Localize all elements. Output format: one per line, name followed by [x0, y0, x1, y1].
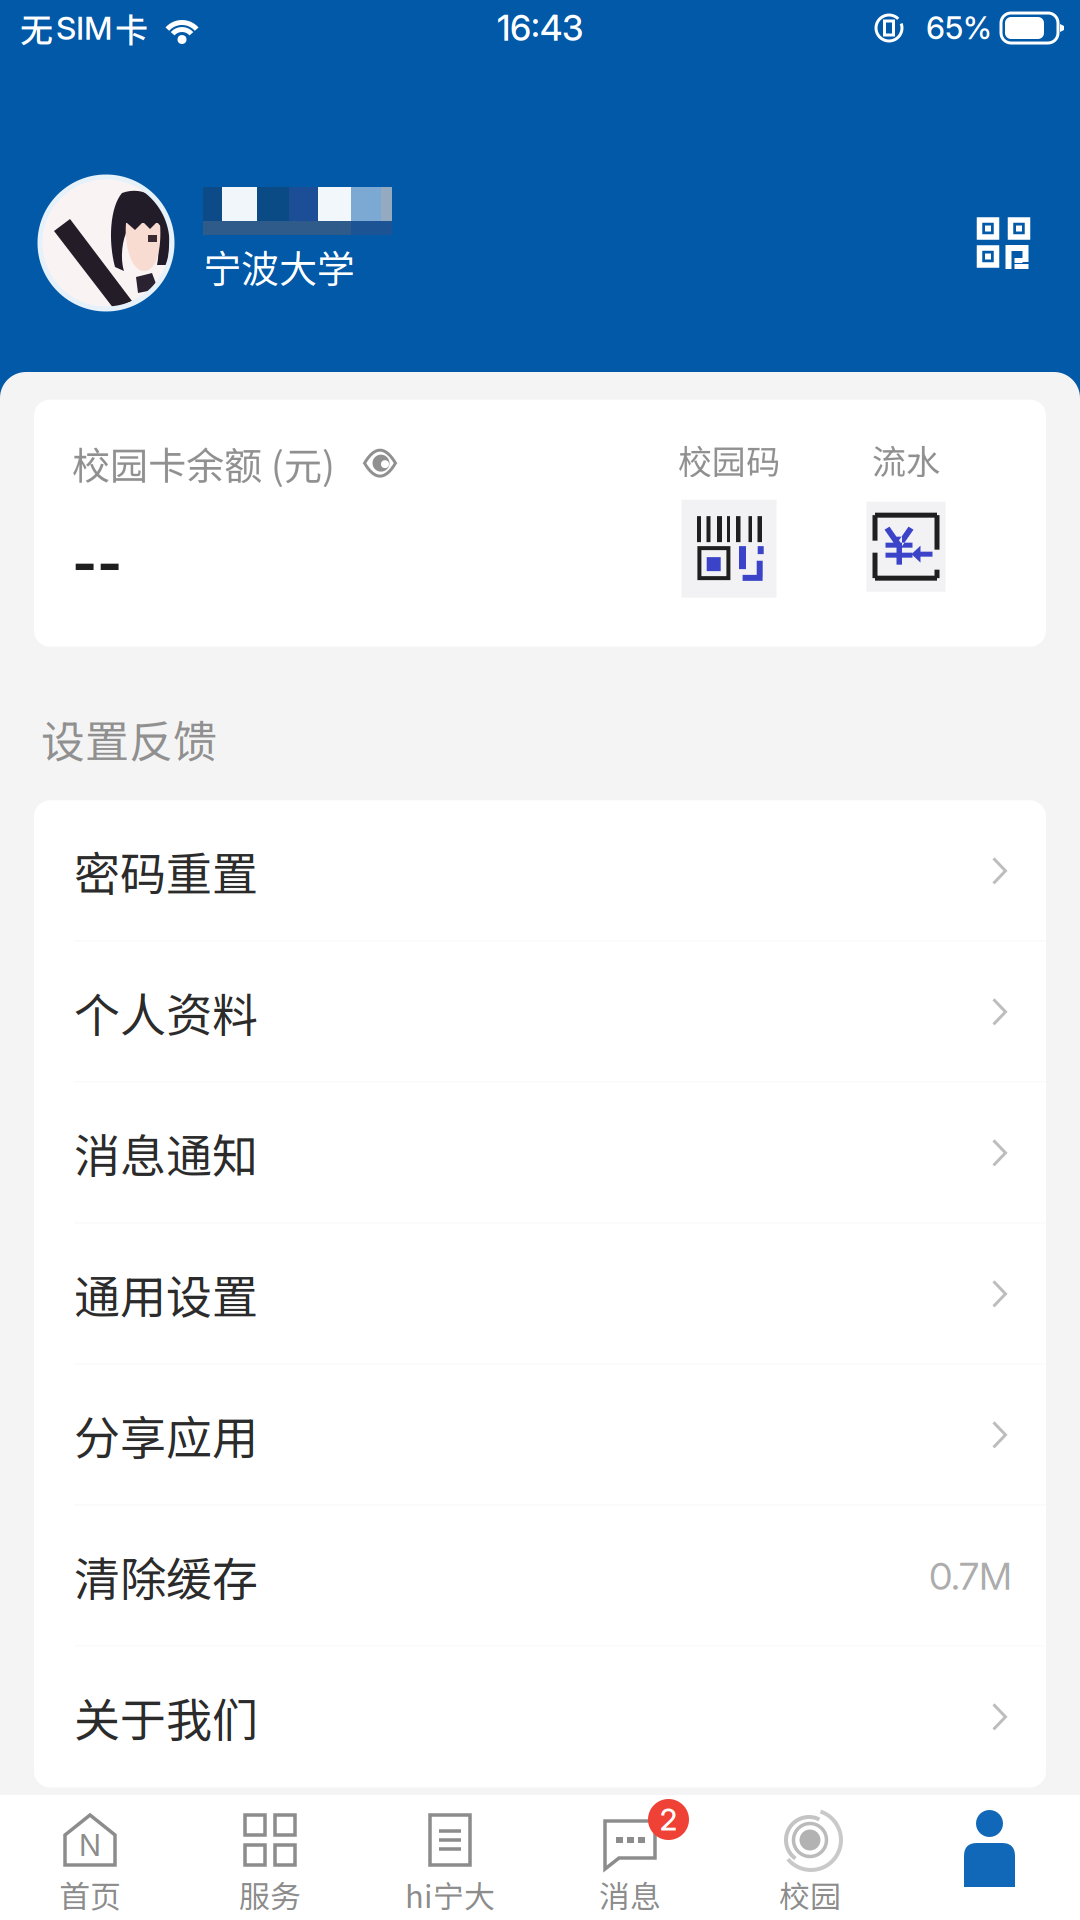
button[interactable]: N [0, 1795, 180, 1920]
button[interactable]: 清除缓存 [34, 1505, 1046, 1646]
staticText: 校园码 [678, 435, 780, 484]
button[interactable]: 扫一扫 [961, 200, 1047, 286]
button[interactable]: 消息通知 [34, 1082, 1046, 1223]
staticText: 密码重置 [74, 838, 258, 904]
staticText: 服务 [239, 1872, 301, 1917]
button[interactable]: 分享应用 [34, 1364, 1046, 1505]
button[interactable]: hi宁大 [360, 1795, 540, 1920]
staticText: 个人资料 [74, 979, 258, 1045]
staticText: 2 [659, 1801, 677, 1838]
staticText: 0.7M [929, 1553, 1012, 1599]
staticText: N [79, 1827, 101, 1863]
button[interactable]: 密码重置 [34, 800, 1046, 941]
button[interactable]: 消息 [540, 1795, 720, 1920]
staticText: -- [72, 531, 122, 596]
staticText: 流水 [872, 435, 940, 484]
staticText: 无 [20, 4, 53, 52]
button[interactable]: 关于我们 [34, 1646, 1046, 1787]
staticText: 分享应用 [74, 1402, 258, 1468]
staticText: 65% [926, 9, 992, 47]
staticText: 宁波大学 [203, 239, 355, 294]
staticText: 消息 [599, 1872, 661, 1917]
button[interactable]: 校园码 [654, 437, 804, 598]
button[interactable]: 校园 [720, 1795, 900, 1920]
button[interactable]: 服务 [180, 1795, 360, 1920]
staticText: 关于我们 [74, 1684, 258, 1750]
staticText: SIM [56, 9, 112, 47]
staticText: 校园卡余额 (元) [72, 436, 335, 491]
staticText: 设置反馈 [41, 707, 217, 770]
staticText: 清除缓存 [74, 1543, 258, 1609]
staticText: 通用设置 [74, 1261, 258, 1327]
button[interactable]: 流水 [831, 437, 981, 592]
staticText: 首页 [59, 1872, 121, 1917]
staticText: 16:43 [497, 7, 583, 49]
staticText: hi宁大 [405, 1872, 495, 1917]
staticText: 校园 [779, 1872, 841, 1917]
staticText: 消息通知 [74, 1120, 258, 1186]
button[interactable]: 显示余额 [363, 448, 397, 478]
button[interactable]: 我的 [900, 1795, 1080, 1920]
button[interactable]: 通用设置 [34, 1223, 1046, 1364]
staticText: 卡 [115, 4, 148, 52]
button[interactable]: 个人资料 [34, 941, 1046, 1082]
